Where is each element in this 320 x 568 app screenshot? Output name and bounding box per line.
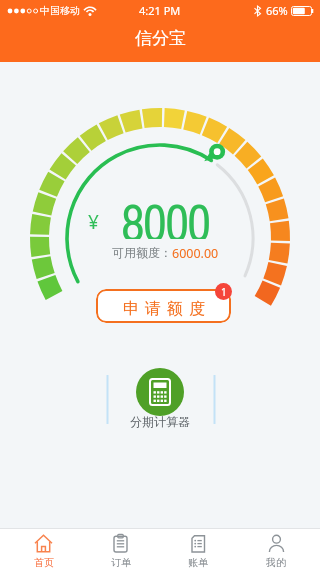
- button[interactable]: 订单: [82, 529, 159, 568]
- button[interactable]: 申请额度: [96, 289, 231, 323]
- staticText: 4:21 PM: [139, 3, 181, 18]
- staticText: 订单: [111, 556, 131, 568]
- staticText: 账单: [188, 556, 208, 568]
- staticText: 66%: [266, 3, 288, 18]
- staticText: 1: [221, 285, 227, 299]
- staticText: 8000: [121, 187, 210, 239]
- button[interactable]: [136, 368, 184, 416]
- button[interactable]: 账单: [159, 529, 237, 568]
- staticText: 可用额度：: [112, 245, 172, 260]
- staticText: 6000.00: [172, 245, 219, 262]
- staticText: 我的: [266, 556, 286, 568]
- staticText: 信分宝: [135, 28, 186, 49]
- button[interactable]: 我的: [237, 529, 315, 568]
- staticText: 首页: [34, 556, 54, 568]
- staticText: 申请额度: [120, 299, 208, 319]
- staticText: 中国移动: [40, 4, 80, 17]
- button[interactable]: 首页: [5, 529, 82, 568]
- staticText: ¥: [88, 209, 99, 235]
- staticText: 分期计算器: [130, 414, 190, 429]
